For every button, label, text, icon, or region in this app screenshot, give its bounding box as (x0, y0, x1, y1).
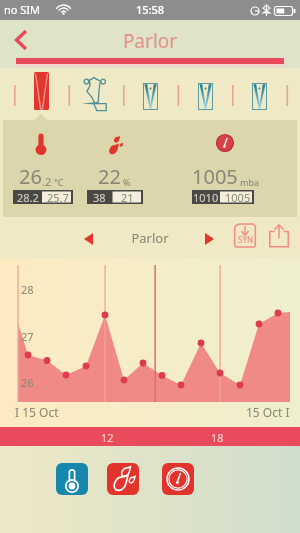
staticText: °C (54, 176, 64, 188)
button[interactable]: Temperature (56, 463, 88, 495)
button[interactable]: Room 4 (198, 83, 213, 110)
button[interactable]: Room 5 (252, 83, 267, 110)
staticText: 1010 (193, 190, 219, 204)
button[interactable]: Humidity (107, 463, 139, 495)
staticText: no SIM (4, 2, 41, 17)
staticText: Parlor (0, 229, 300, 247)
staticText: 38 (93, 190, 106, 204)
button[interactable]: Sync (234, 223, 256, 248)
staticText: 27 (21, 329, 34, 344)
staticText: Parlor (0, 28, 300, 54)
staticText: 26 (21, 375, 34, 390)
staticText: 21 (121, 190, 134, 204)
button[interactable]: Share (268, 223, 290, 248)
staticText: I 15 Oct (15, 404, 59, 420)
staticText: 22 (98, 163, 121, 190)
staticText: .2 (42, 174, 52, 189)
staticText: 1005 (225, 190, 251, 204)
button[interactable]: Room 3 (143, 83, 158, 110)
staticText: 25.7 (47, 190, 69, 204)
staticText: 28.2 (17, 190, 39, 204)
staticText: 15 Oct I (246, 404, 290, 420)
button[interactable]: Next (200, 227, 218, 247)
button[interactable]: Pressure (162, 463, 194, 495)
staticText: 18 (211, 430, 224, 445)
staticText: SYN (238, 234, 253, 245)
staticText: 1005 (192, 163, 238, 190)
button[interactable]: Previous (80, 227, 98, 247)
button[interactable]: Back (9, 26, 33, 50)
staticText: % (123, 176, 131, 188)
staticText: 12 (101, 430, 114, 445)
staticText: 28 (21, 282, 34, 297)
staticText: mba (240, 176, 259, 188)
button[interactable]: Room 1 (34, 72, 49, 110)
staticText: 15:58 (136, 2, 165, 17)
staticText: 26 (19, 163, 42, 190)
button[interactable]: Room 2 (81, 74, 109, 112)
